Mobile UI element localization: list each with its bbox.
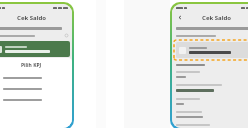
staticText: Cek Saldo: [17, 14, 46, 22]
button[interactable]: [0, 83, 72, 94]
staticText: Cek Saldo: [202, 14, 231, 22]
button[interactable]: [0, 41, 70, 57]
button[interactable]: [0, 94, 72, 105]
staticText: Pilih KPJ: [21, 62, 42, 69]
button[interactable]: [174, 40, 248, 60]
button[interactable]: Back: [175, 13, 184, 22]
button[interactable]: [0, 72, 72, 83]
